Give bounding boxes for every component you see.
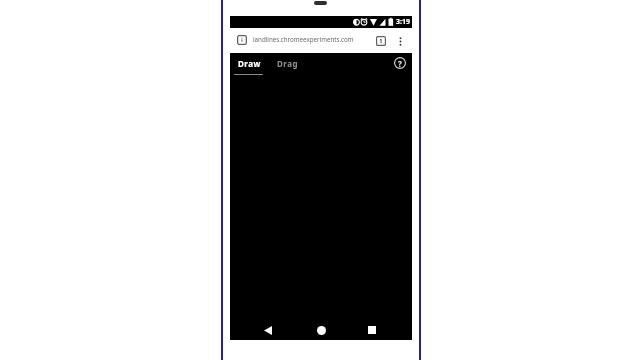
button[interactable]: Home	[311, 320, 331, 340]
staticText: Drag	[277, 58, 299, 69]
button[interactable]: Help	[391, 54, 409, 72]
button[interactable]: Recent apps	[362, 320, 382, 340]
staticText: Draw	[238, 58, 261, 69]
staticText: ?	[398, 58, 402, 69]
button[interactable]: Switch tabs	[374, 34, 388, 48]
staticText: 3:19	[396, 17, 410, 27]
button[interactable]: Site information	[235, 33, 249, 47]
button[interactable]: Drag	[272, 54, 304, 73]
staticText: landlines.chromeexperiments.com	[253, 35, 354, 43]
button[interactable]: Back	[258, 320, 278, 340]
button[interactable]: Draw	[233, 54, 266, 73]
button[interactable]: More options	[393, 34, 407, 48]
